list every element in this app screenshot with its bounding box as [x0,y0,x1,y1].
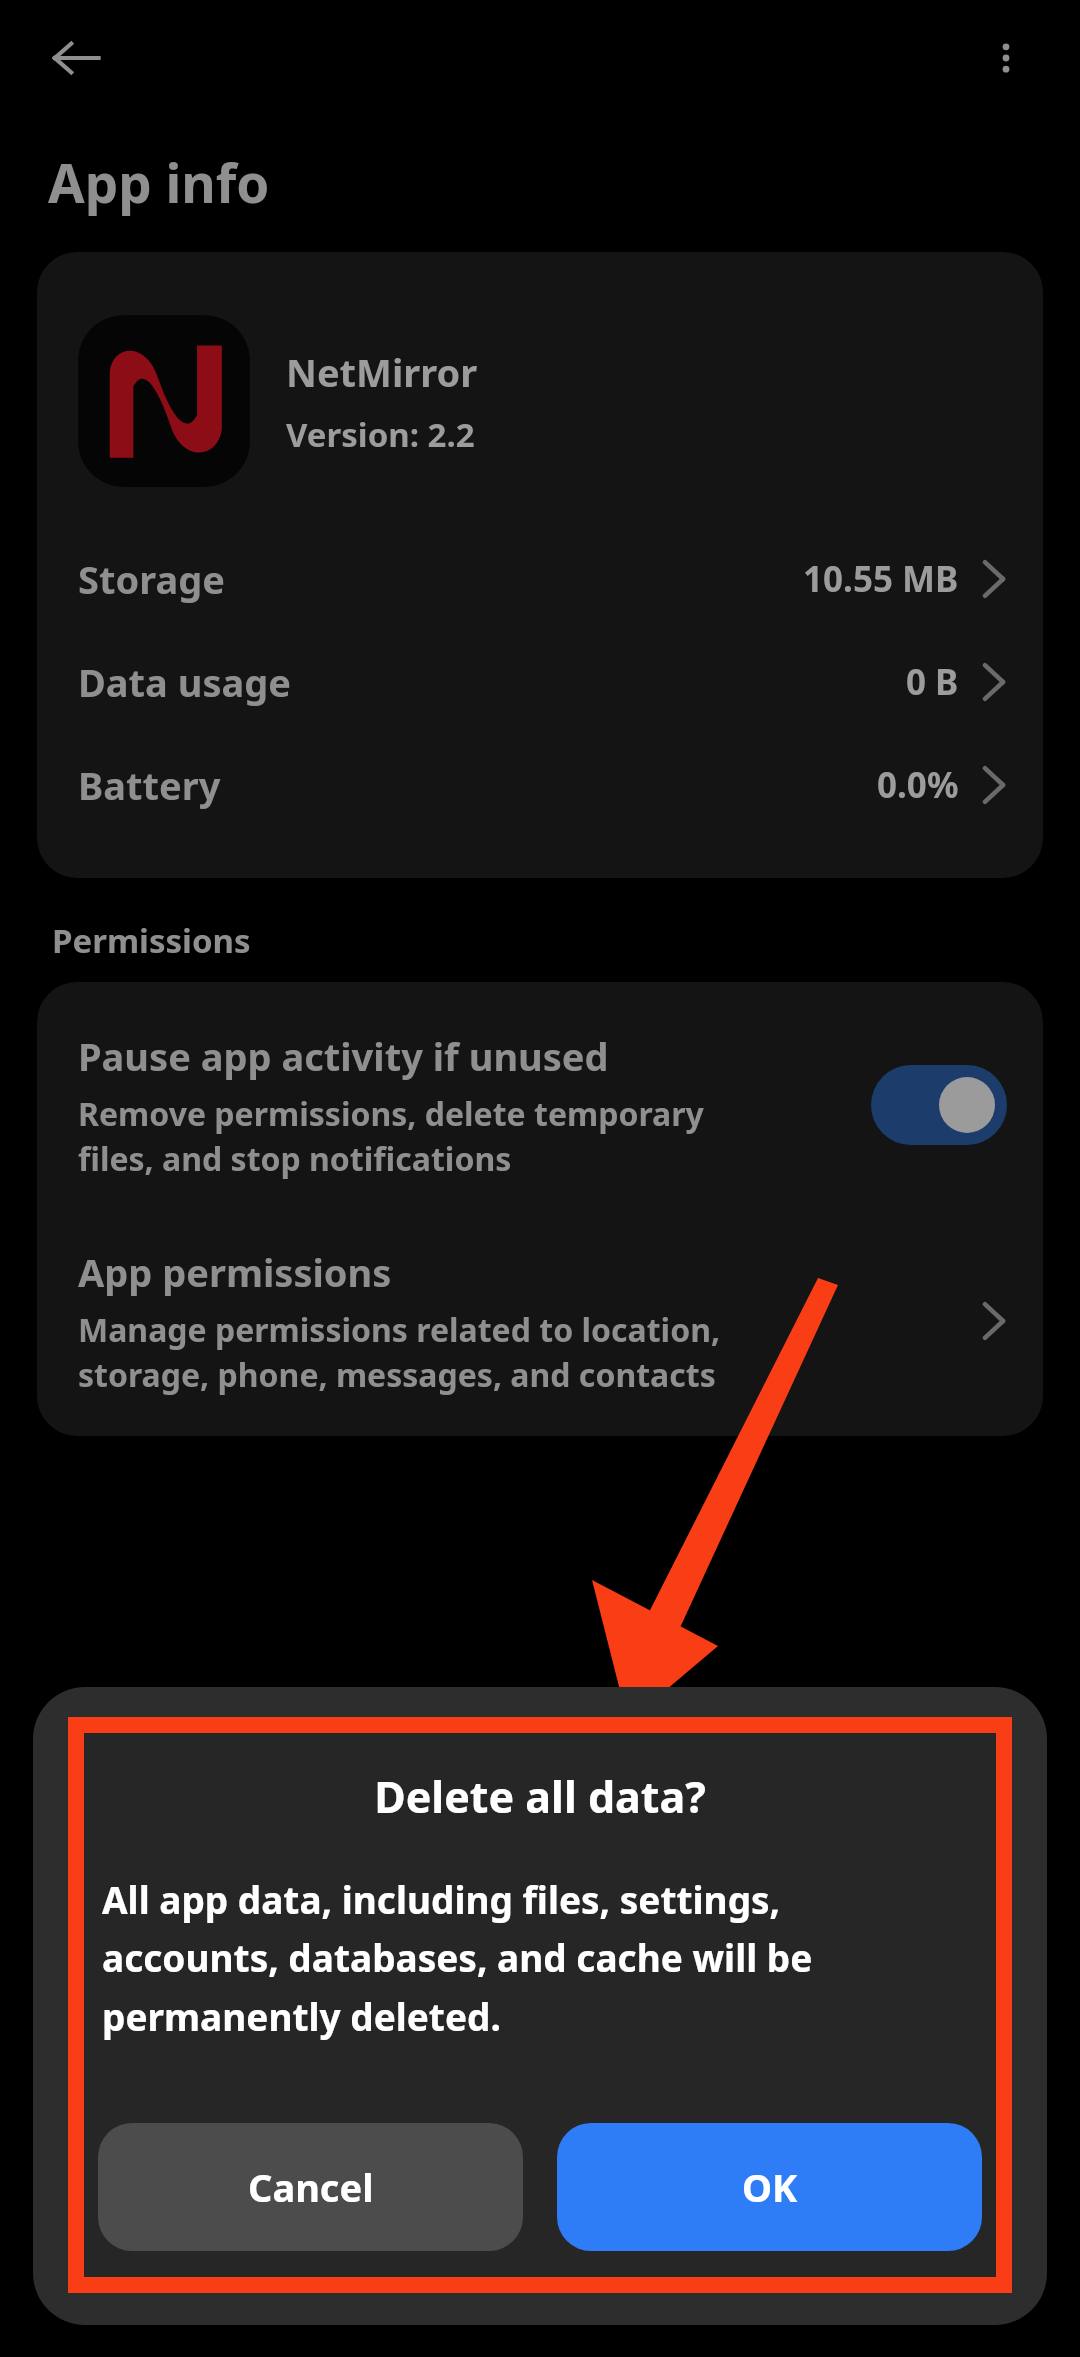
staticText: Version: 2.2 [286,412,475,457]
button[interactable]: Storage [37,527,1043,630]
staticText: Remove permissions, delete temporary fil… [78,1092,704,1180]
staticText: App info [48,146,270,218]
staticText: Pause app activity if unused [78,1030,609,1082]
staticText: 0.0% [877,761,959,809]
button[interactable]: Pause app activity if unused [37,982,1043,1206]
button[interactable]: App permissions [37,1206,1043,1436]
staticText: Storage [78,553,225,605]
staticText: Battery [78,759,221,811]
staticText: 0 B [906,658,959,706]
button[interactable]: Cancel [98,2123,523,2251]
staticText: Cancel [248,2161,374,2213]
staticText: Permissions [52,918,251,963]
button[interactable]: More options [970,22,1042,94]
staticText: Delete all data? [84,1767,996,1826]
button[interactable]: OK [557,2123,982,2251]
staticText: App permissions [78,1246,392,1298]
staticText: All app data, including files, settings,… [102,1874,813,2042]
button[interactable]: Pause app activity toggle [871,1065,1007,1145]
button[interactable]: Back [40,22,112,94]
staticText: NetMirror [286,346,478,398]
staticText: Data usage [78,656,291,708]
staticText: OK [742,2161,798,2213]
button[interactable]: Data usage [37,630,1043,733]
staticText: 10.55 MB [803,555,959,603]
button[interactable]: Battery [37,733,1043,836]
staticText: Manage permissions related to location, … [78,1308,721,1396]
